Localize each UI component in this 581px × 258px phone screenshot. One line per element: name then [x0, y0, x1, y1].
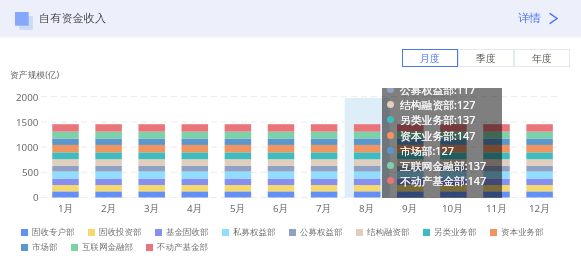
staticText: 详情: [518, 11, 541, 25]
button[interactable]: 季度: [458, 49, 514, 67]
staticText: 互联网金融部: [82, 242, 133, 253]
staticText: 10月: [442, 202, 464, 215]
staticText: 资本业务部:147: [400, 128, 476, 143]
staticText: 基金固收部: [166, 227, 209, 238]
staticText: 互联网金融部:137: [400, 158, 487, 173]
staticText: 固收投资部: [99, 227, 142, 238]
staticText: 1月: [58, 202, 74, 215]
staticText: 私募权益部: [233, 227, 276, 238]
staticText: 年度: [532, 52, 552, 65]
button[interactable]: 不动产基金部: [146, 242, 208, 253]
staticText: 结构融资部:127: [400, 97, 476, 112]
staticText: 资产规模(亿): [10, 69, 60, 81]
staticText: 不动产基金部: [157, 242, 208, 253]
button[interactable]: 固收投资部: [88, 227, 142, 238]
button[interactable]: 公募权益部: [289, 227, 343, 238]
button[interactable]: 私募权益部: [222, 227, 276, 238]
staticText: 另类业务部:137: [400, 112, 476, 127]
staticText: 自有资金收入: [39, 11, 107, 25]
staticText: 8月: [359, 202, 375, 215]
button[interactable]: 固收专户部: [21, 227, 75, 238]
staticText: 另类业务部: [434, 227, 477, 238]
staticText: 公募权益部:117: [400, 88, 476, 97]
staticText: 月度: [420, 52, 440, 65]
staticText: 11月: [486, 202, 508, 215]
button[interactable]: 基金固收部: [155, 227, 209, 238]
staticText: 固收专户部: [32, 227, 75, 238]
staticText: 4月: [187, 202, 203, 215]
button[interactable]: 互联网金融部: [71, 242, 133, 253]
staticText: 1500: [16, 116, 39, 128]
staticText: 市场部:127: [400, 143, 454, 158]
button[interactable]: 资本业务部: [490, 227, 544, 238]
staticText: 2000: [16, 91, 39, 103]
button[interactable]: 年度: [514, 49, 570, 67]
button[interactable]: 结构融资部: [356, 227, 410, 238]
staticText: 0: [33, 191, 39, 203]
button[interactable]: 月度: [402, 49, 458, 67]
button[interactable]: 详情: [516, 0, 560, 36]
staticText: 不动产基金部:147: [400, 173, 487, 188]
staticText: 6月: [273, 202, 289, 215]
staticText: 公募权益部: [300, 227, 343, 238]
staticText: 1000: [16, 141, 39, 153]
staticText: 资本业务部: [501, 227, 544, 238]
staticText: 12月: [529, 202, 551, 215]
staticText: 500: [22, 166, 39, 178]
staticText: 季度: [476, 52, 496, 65]
button[interactable]: 另类业务部: [423, 227, 477, 238]
staticText: 2月: [101, 202, 117, 215]
button[interactable]: 市场部: [21, 242, 58, 253]
staticText: 市场部: [32, 242, 58, 253]
staticText: 3月: [144, 202, 160, 215]
staticText: 9月: [402, 202, 418, 215]
staticText: 结构融资部: [367, 227, 410, 238]
staticText: 5月: [230, 202, 246, 215]
staticText: 7月: [316, 202, 332, 215]
